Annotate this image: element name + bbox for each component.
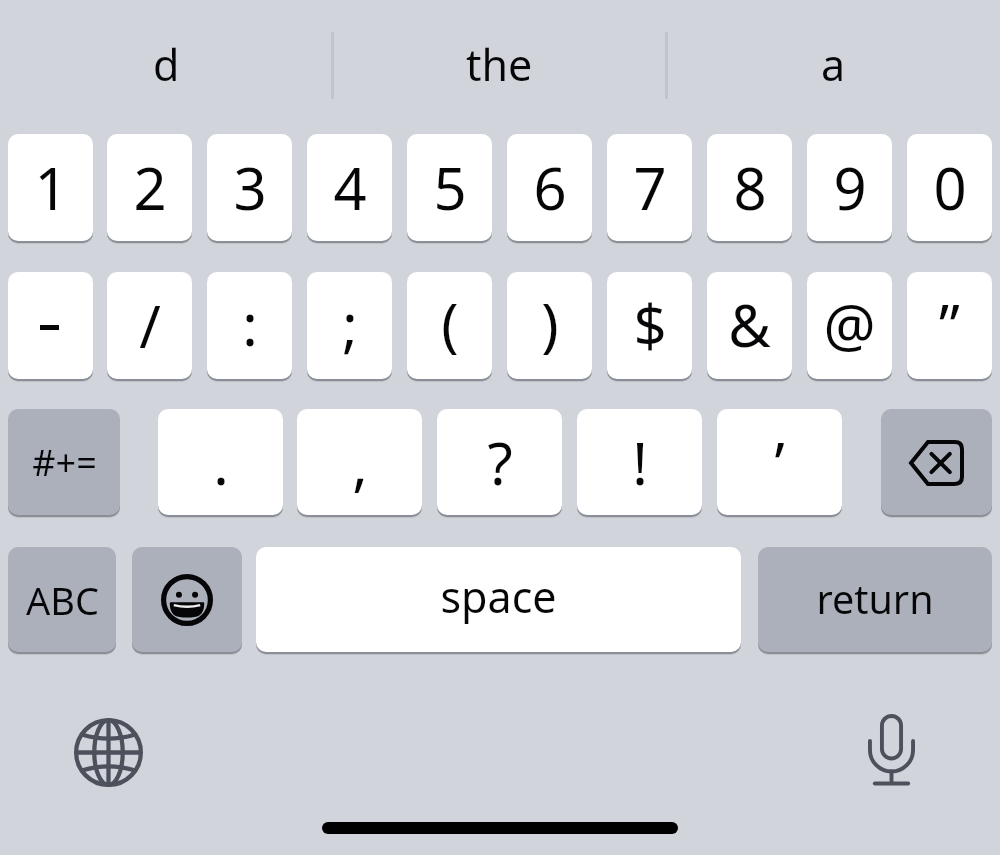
button[interactable]: space — [256, 547, 741, 652]
button[interactable]: #+= — [8, 409, 120, 515]
staticText: . — [213, 423, 229, 502]
staticText: 5 — [433, 148, 467, 227]
staticText: 6 — [533, 148, 567, 227]
button[interactable]: ABC — [8, 547, 116, 652]
staticText: a — [821, 35, 846, 94]
button[interactable]: , — [297, 409, 422, 515]
button[interactable]: Dictation — [868, 714, 915, 786]
button[interactable]: $ — [607, 272, 692, 379]
staticText: @ — [823, 285, 876, 364]
staticText: ’ — [774, 423, 785, 502]
staticText: 7 — [633, 148, 667, 227]
button[interactable]: Delete — [881, 409, 992, 515]
staticText: , — [352, 423, 368, 502]
staticText: the — [466, 35, 533, 94]
button[interactable]: & — [707, 272, 792, 379]
staticText: ) — [541, 284, 559, 363]
staticText: space — [440, 567, 557, 626]
staticText: ! — [632, 423, 648, 502]
staticText: 8 — [733, 148, 767, 227]
button[interactable]: 7 — [607, 134, 692, 241]
button[interactable]: : — [207, 272, 292, 379]
button[interactable]: a — [667, 25, 1000, 103]
button[interactable]: @ — [807, 272, 892, 379]
button[interactable]: 6 — [507, 134, 592, 241]
staticText: d — [153, 35, 180, 94]
button[interactable]: d — [0, 25, 333, 103]
button[interactable]: 2 — [107, 134, 192, 241]
staticText: 4 — [333, 148, 367, 227]
staticText: return — [816, 572, 934, 626]
staticText: ( — [441, 284, 459, 363]
button[interactable]: 4 — [307, 134, 392, 241]
staticText: #+= — [32, 438, 97, 487]
staticText: 2 — [133, 148, 167, 227]
button[interactable]: Hyphen — [8, 272, 93, 379]
staticText: 0 — [933, 148, 967, 227]
button[interactable]: ! — [577, 409, 702, 515]
button[interactable]: 1 — [8, 134, 93, 241]
staticText: $ — [633, 285, 667, 364]
staticText: : — [242, 284, 258, 363]
button[interactable]: ; — [307, 272, 392, 379]
staticText: / — [139, 286, 161, 365]
button[interactable]: Next keyboard — [74, 718, 143, 787]
button[interactable]: return — [758, 547, 992, 652]
staticText: ? — [487, 423, 513, 502]
staticText: & — [728, 285, 771, 364]
button[interactable]: 9 — [807, 134, 892, 241]
button[interactable]: 8 — [707, 134, 792, 241]
staticText: 3 — [233, 148, 267, 227]
button[interactable]: ’ — [717, 409, 842, 515]
button[interactable]: ” — [907, 272, 992, 379]
staticText: 9 — [833, 148, 867, 227]
button[interactable]: ( — [407, 272, 492, 379]
button[interactable]: 5 — [407, 134, 492, 241]
button[interactable]: the — [333, 25, 666, 103]
staticText: ABC — [26, 574, 99, 626]
staticText: 1 — [34, 148, 68, 227]
button[interactable]: 0 — [907, 134, 992, 241]
staticText: ” — [939, 285, 960, 364]
staticText: ; — [342, 284, 358, 363]
button[interactable]: / — [107, 272, 192, 379]
button[interactable]: Emoji — [132, 547, 242, 652]
button[interactable]: ) — [507, 272, 592, 379]
button[interactable]: . — [158, 409, 283, 515]
button[interactable]: 3 — [207, 134, 292, 241]
button[interactable]: ? — [437, 409, 562, 515]
